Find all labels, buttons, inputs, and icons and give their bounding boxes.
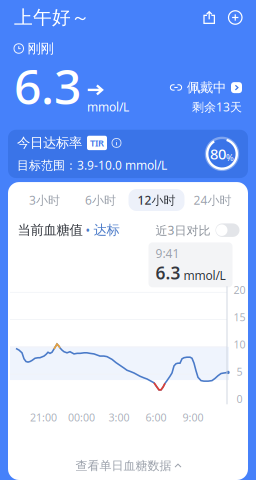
staticText: 21:00 (30, 410, 57, 424)
staticText: 查看单日血糖数据 (75, 458, 171, 473)
button[interactable]: 3小时 (16, 189, 72, 211)
button[interactable]: 近3日对比 (215, 223, 239, 237)
staticText: 3小时 (29, 192, 60, 208)
button[interactable]: 添加 (228, 11, 242, 24)
staticText: 15 (233, 310, 245, 324)
staticText: 5 (236, 364, 242, 379)
staticText: 00:00 (68, 410, 95, 424)
button[interactable]: 佩戴中 (170, 79, 242, 96)
staticText: 上午好～ (14, 6, 90, 29)
staticText: 80 (210, 144, 226, 164)
button[interactable]: 查看单日血糖数据 (8, 451, 248, 480)
staticText: 当前血糖值 (17, 222, 82, 238)
staticText: 刚刚 (27, 40, 53, 57)
staticText: 9:41 (155, 245, 179, 261)
staticText: 12小时 (137, 192, 175, 208)
staticText: 6小时 (85, 192, 116, 208)
staticText: • (82, 222, 93, 238)
staticText: mmol/L (183, 267, 225, 283)
staticText: 剩余13天 (192, 99, 242, 115)
staticText: 24小时 (193, 192, 231, 208)
staticText: 目标范围：3.9-10.0 mmol/L (17, 157, 167, 173)
staticText: 今日达标率 (17, 135, 82, 151)
staticText: 3:00 (108, 410, 129, 424)
button[interactable]: 分享 (203, 11, 215, 24)
staticText: 佩戴中 (187, 79, 226, 96)
staticText: mmol/L (87, 99, 129, 115)
button[interactable]: 今日达标率 (8, 130, 248, 178)
button[interactable]: 12小时 (128, 189, 184, 211)
staticText: 9:00 (182, 410, 203, 424)
staticText: TIR (90, 137, 104, 149)
button[interactable]: 24小时 (184, 189, 240, 211)
staticText: 0 (236, 392, 242, 406)
staticText: % (226, 151, 234, 164)
staticText: 6.3 (155, 261, 180, 284)
staticText: 20 (233, 283, 245, 297)
button[interactable]: 6小时 (72, 189, 128, 211)
staticText: 6:00 (145, 410, 166, 424)
staticText: 10 (233, 337, 245, 351)
staticText: 近3日对比 (155, 222, 210, 238)
staticText: 6.3 (14, 54, 81, 118)
staticText: 达标 (93, 222, 119, 238)
